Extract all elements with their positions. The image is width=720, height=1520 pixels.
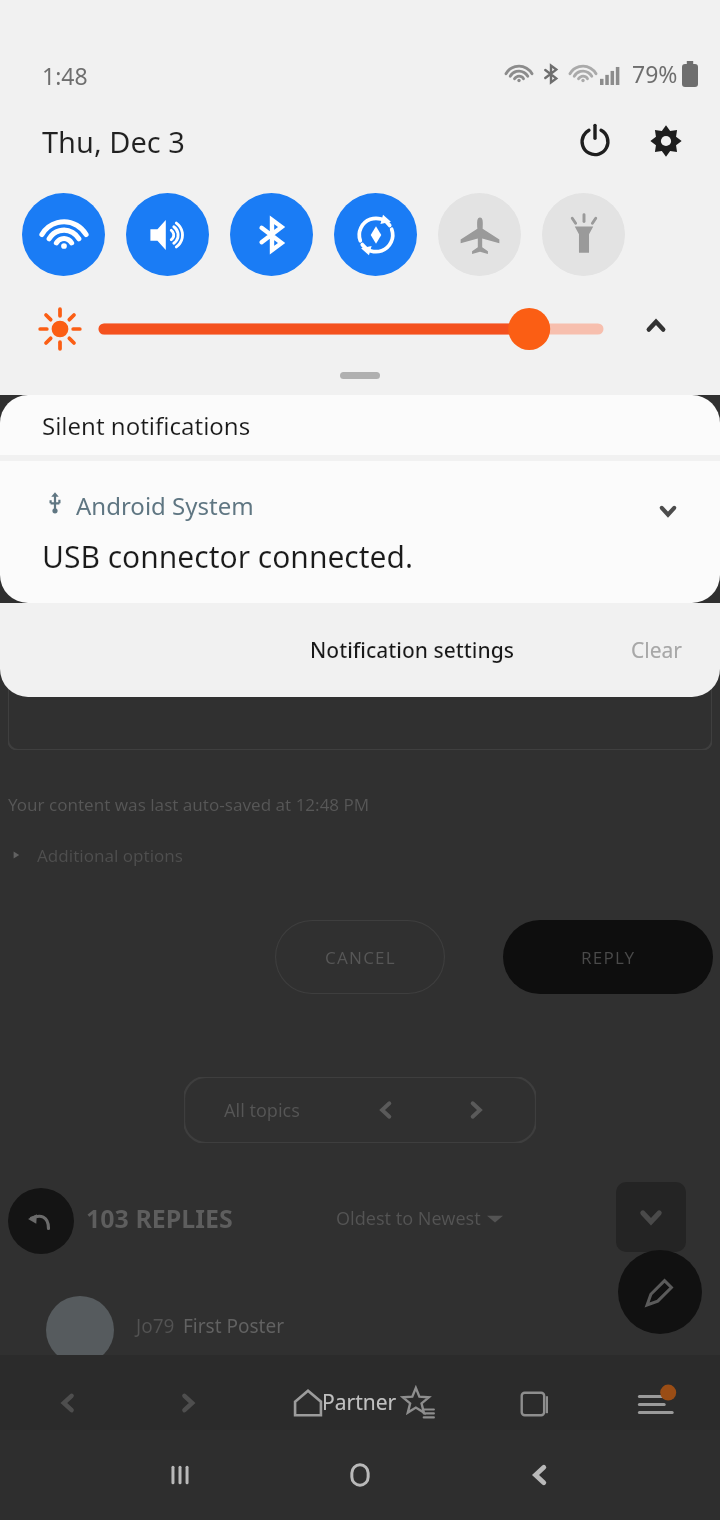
button[interactable]: All topics — [184, 1077, 536, 1143]
staticText: Jo79 — [136, 1313, 175, 1339]
staticText: Oldest to Newest — [336, 1206, 481, 1231]
button[interactable]: Back — [490, 1430, 590, 1520]
staticText: Partner — [322, 1388, 397, 1417]
button[interactable]: Home — [310, 1430, 410, 1520]
button[interactable]: Settings — [634, 109, 698, 173]
staticText: USB connector connected. — [42, 536, 414, 577]
button[interactable]: Wi-Fi — [22, 193, 105, 276]
button[interactable]: Airplane mode — [438, 193, 521, 276]
button[interactable]: Menu — [622, 1355, 692, 1450]
button[interactable]: Back — [38, 1355, 98, 1450]
staticText: Your content was last auto-saved at 12:4… — [8, 793, 370, 816]
button[interactable]: Android System — [0, 461, 720, 603]
staticText: Android System — [76, 489, 254, 522]
button[interactable] — [100, 314, 602, 344]
staticText: All topics — [224, 1098, 300, 1123]
button[interactable]: Reply — [8, 1188, 74, 1254]
staticText: 79% — [632, 58, 678, 89]
staticText: First Poster — [183, 1313, 285, 1339]
staticText: Silent notifications — [42, 409, 251, 442]
button[interactable]: Flashlight — [542, 193, 625, 276]
staticText: Clear — [631, 636, 682, 665]
button[interactable]: Favorites — [388, 1355, 448, 1450]
button[interactable]: Notification settings — [310, 636, 514, 665]
button[interactable]: Calendar — [506, 1355, 566, 1450]
button[interactable]: Power — [563, 109, 627, 173]
button[interactable]: Collapse — [640, 483, 696, 539]
staticText: CANCEL — [325, 946, 396, 969]
staticText: Thu, Dec 3 — [42, 122, 185, 161]
button[interactable]: Sound — [126, 193, 209, 276]
staticText: Additional options — [37, 844, 184, 867]
staticText: 1:48 — [42, 60, 88, 91]
button[interactable]: Clear — [631, 636, 682, 665]
staticText: Notification settings — [310, 636, 514, 665]
button[interactable]: Forward — [158, 1355, 218, 1450]
staticText: REPLY — [581, 946, 636, 969]
staticText: 103 REPLIES — [86, 1201, 233, 1235]
button[interactable]: Additional options — [6, 838, 184, 872]
button[interactable]: Scroll to top — [616, 1182, 686, 1252]
button[interactable]: Oldest to Newest — [336, 1206, 503, 1231]
button[interactable]: Bluetooth — [230, 193, 313, 276]
button[interactable]: REPLY — [503, 920, 713, 994]
button[interactable]: Recents — [130, 1430, 230, 1520]
button[interactable]: Auto rotate — [334, 193, 417, 276]
button[interactable]: Home — [278, 1355, 338, 1450]
button[interactable]: Silent notifications — [0, 395, 720, 455]
button[interactable]: CANCEL — [275, 920, 445, 994]
button[interactable]: Expand brightness — [624, 294, 688, 358]
button[interactable]: Compose — [618, 1250, 702, 1334]
